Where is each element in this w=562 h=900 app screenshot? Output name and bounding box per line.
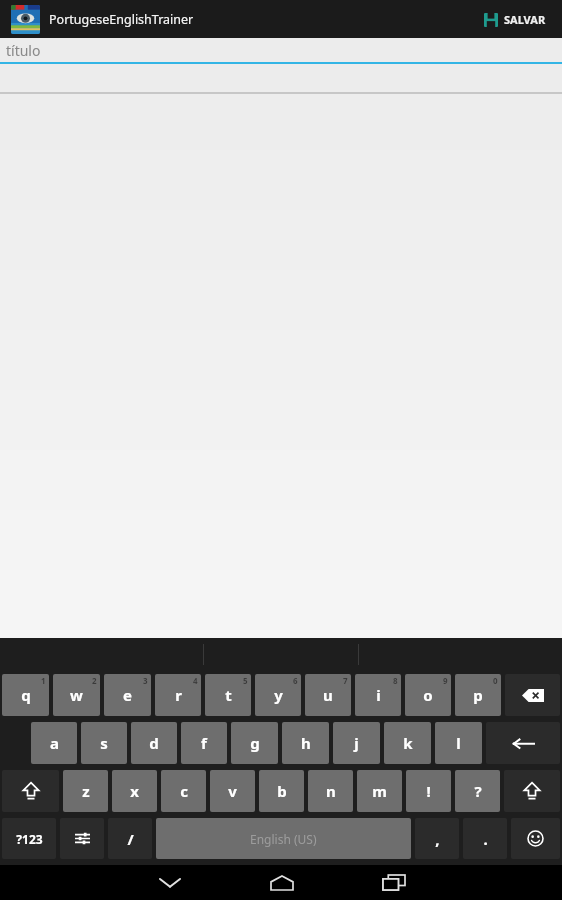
button[interactable]: .: [463, 818, 507, 859]
staticText: ?: [474, 781, 482, 801]
staticText: n: [326, 781, 336, 801]
staticText: 7: [343, 675, 348, 686]
staticText: z: [82, 781, 90, 801]
button[interactable]: m: [357, 770, 402, 812]
button[interactable]: p: [455, 674, 501, 716]
staticText: y: [274, 685, 283, 705]
button[interactable]: /: [108, 818, 152, 859]
button[interactable]: a: [31, 722, 77, 764]
staticText: 3: [143, 675, 148, 686]
staticText: m: [372, 781, 387, 801]
staticText: h: [301, 733, 311, 753]
button[interactable]: Shift: [504, 770, 560, 812]
staticText: English (US): [250, 831, 317, 847]
button[interactable]: o: [405, 674, 451, 716]
staticText: 8: [393, 675, 398, 686]
staticText: p: [473, 685, 483, 705]
staticText: a: [50, 733, 59, 753]
button[interactable]: s: [81, 722, 127, 764]
staticText: ,: [435, 829, 440, 849]
staticText: .: [483, 829, 488, 849]
button[interactable]: i: [355, 674, 401, 716]
staticText: u: [323, 685, 333, 705]
button[interactable]: f: [181, 722, 227, 764]
button[interactable]: d: [131, 722, 177, 764]
button[interactable]: Backspace: [505, 674, 560, 716]
button[interactable]: Shift: [2, 770, 59, 812]
staticText: 1: [41, 675, 46, 686]
staticText: 6: [293, 675, 298, 686]
staticText: e: [123, 685, 132, 705]
button[interactable]: Enter: [486, 722, 560, 764]
staticText: SALVAR: [504, 12, 546, 27]
staticText: título: [6, 41, 41, 60]
button[interactable]: h: [282, 722, 329, 764]
button[interactable]: z: [63, 770, 108, 812]
staticText: ?123: [16, 831, 43, 847]
button[interactable]: u: [305, 674, 351, 716]
staticText: 2: [92, 675, 97, 686]
button[interactable]: w: [53, 674, 100, 716]
button[interactable]: Emoji: [511, 818, 560, 859]
button[interactable]: x: [112, 770, 157, 812]
staticText: b: [277, 781, 287, 801]
button[interactable]: Recent apps: [338, 865, 450, 900]
staticText: d: [149, 733, 159, 753]
staticText: v: [228, 781, 237, 801]
staticText: /: [127, 829, 134, 849]
staticText: c: [180, 781, 188, 801]
button[interactable]: título: [0, 38, 562, 62]
staticText: l: [456, 733, 461, 753]
button[interactable]: e: [104, 674, 151, 716]
button[interactable]: b: [259, 770, 304, 812]
staticText: k: [403, 733, 413, 753]
button[interactable]: c: [161, 770, 206, 812]
button[interactable]: ?: [455, 770, 500, 812]
staticText: j: [354, 733, 359, 753]
button[interactable]: SALVAR: [478, 6, 552, 33]
staticText: 0: [493, 675, 498, 686]
button[interactable]: Keyboard settings: [60, 818, 104, 859]
staticText: r: [175, 685, 182, 705]
button[interactable]: g: [231, 722, 278, 764]
button[interactable]: v: [210, 770, 255, 812]
button[interactable]: l: [435, 722, 482, 764]
staticText: o: [423, 685, 433, 705]
staticText: 9: [443, 675, 448, 686]
staticText: q: [21, 685, 31, 705]
staticText: !: [426, 781, 431, 801]
button[interactable]: j: [333, 722, 380, 764]
staticText: 5: [243, 675, 248, 686]
staticText: g: [250, 733, 260, 753]
button[interactable]: k: [384, 722, 431, 764]
staticText: i: [376, 685, 381, 705]
button[interactable]: r: [155, 674, 201, 716]
button[interactable]: y: [255, 674, 301, 716]
button[interactable]: q: [2, 674, 49, 716]
button[interactable]: Home: [226, 865, 338, 900]
button[interactable]: Hide keyboard: [113, 865, 226, 900]
staticText: t: [225, 685, 232, 705]
staticText: PortugeseEnglishTrainer: [49, 11, 194, 28]
button[interactable]: ?123: [2, 818, 56, 859]
button[interactable]: !: [406, 770, 451, 812]
button[interactable]: English (US): [156, 818, 411, 859]
button[interactable]: n: [308, 770, 353, 812]
staticText: s: [100, 733, 108, 753]
button[interactable]: t: [205, 674, 251, 716]
staticText: 4: [193, 675, 198, 686]
staticText: x: [130, 781, 139, 801]
button[interactable]: ,: [415, 818, 459, 859]
staticText: f: [201, 733, 207, 753]
staticText: w: [70, 685, 83, 705]
